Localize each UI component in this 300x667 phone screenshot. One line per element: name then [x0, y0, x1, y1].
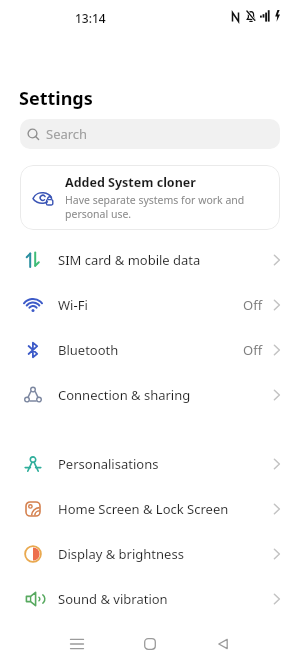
button[interactable]: Display & brightness [0, 531, 300, 576]
button[interactable]: Bluetooth [0, 327, 300, 372]
button[interactable] [47, 627, 107, 661]
staticText: Connection & sharing [58, 386, 191, 404]
button[interactable]: Personalisations [0, 441, 300, 486]
staticText: Personalisations [58, 455, 159, 473]
staticText: Home Screen & Lock Screen [58, 500, 229, 518]
staticText: Off [243, 296, 263, 314]
staticText: Settings [19, 86, 93, 111]
button[interactable]: Home Screen & Lock Screen [0, 486, 300, 531]
button[interactable]: Connection & sharing [0, 372, 300, 417]
button[interactable]: Sound & vibration [0, 576, 300, 621]
button[interactable]: Added System cloner [20, 165, 280, 230]
staticText: Added System cloner [65, 174, 196, 191]
staticText: 13:14 [75, 10, 106, 26]
staticText: SIM card & mobile data [58, 251, 201, 269]
button[interactable] [193, 627, 253, 661]
staticText: Off [243, 341, 263, 359]
staticText: Bluetooth [58, 341, 119, 359]
staticText: Wi-Fi [58, 296, 88, 314]
button[interactable]: SIM card & mobile data [0, 237, 300, 282]
button[interactable] [120, 627, 180, 661]
button[interactable]: Search [20, 119, 280, 149]
staticText: Search [46, 125, 88, 143]
button[interactable]: Wi-Fi [0, 282, 300, 327]
staticText: Have separate systems for work and perso… [65, 193, 245, 221]
staticText: Display & brightness [58, 545, 184, 563]
staticText: Sound & vibration [58, 590, 168, 608]
